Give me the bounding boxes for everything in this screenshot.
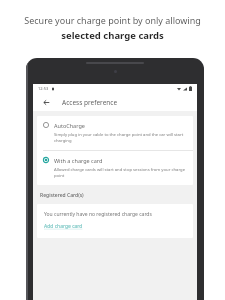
staticText: 12:53	[38, 86, 49, 91]
button[interactable]: AutoCharge	[37, 116, 193, 150]
staticText: Allowed charge cards will start and stop…	[54, 167, 187, 179]
staticText: AutoCharge	[54, 122, 85, 129]
staticText: Secure your charge point by only allowin…	[24, 14, 201, 26]
staticText: Add charge card	[44, 223, 83, 230]
staticText: You currently have no registered charge …	[44, 211, 152, 218]
staticText: Registered Card(s)	[40, 192, 84, 199]
button[interactable]: Add charge card	[44, 223, 83, 230]
staticText: selected charge cards	[61, 29, 164, 42]
button[interactable]: With a charge card	[37, 151, 193, 185]
staticText: With a charge card	[54, 157, 103, 164]
staticText: Simply plug in your cable to the charge …	[54, 132, 187, 144]
button[interactable]: Back	[39, 95, 53, 109]
staticText: Access preference	[62, 98, 118, 107]
